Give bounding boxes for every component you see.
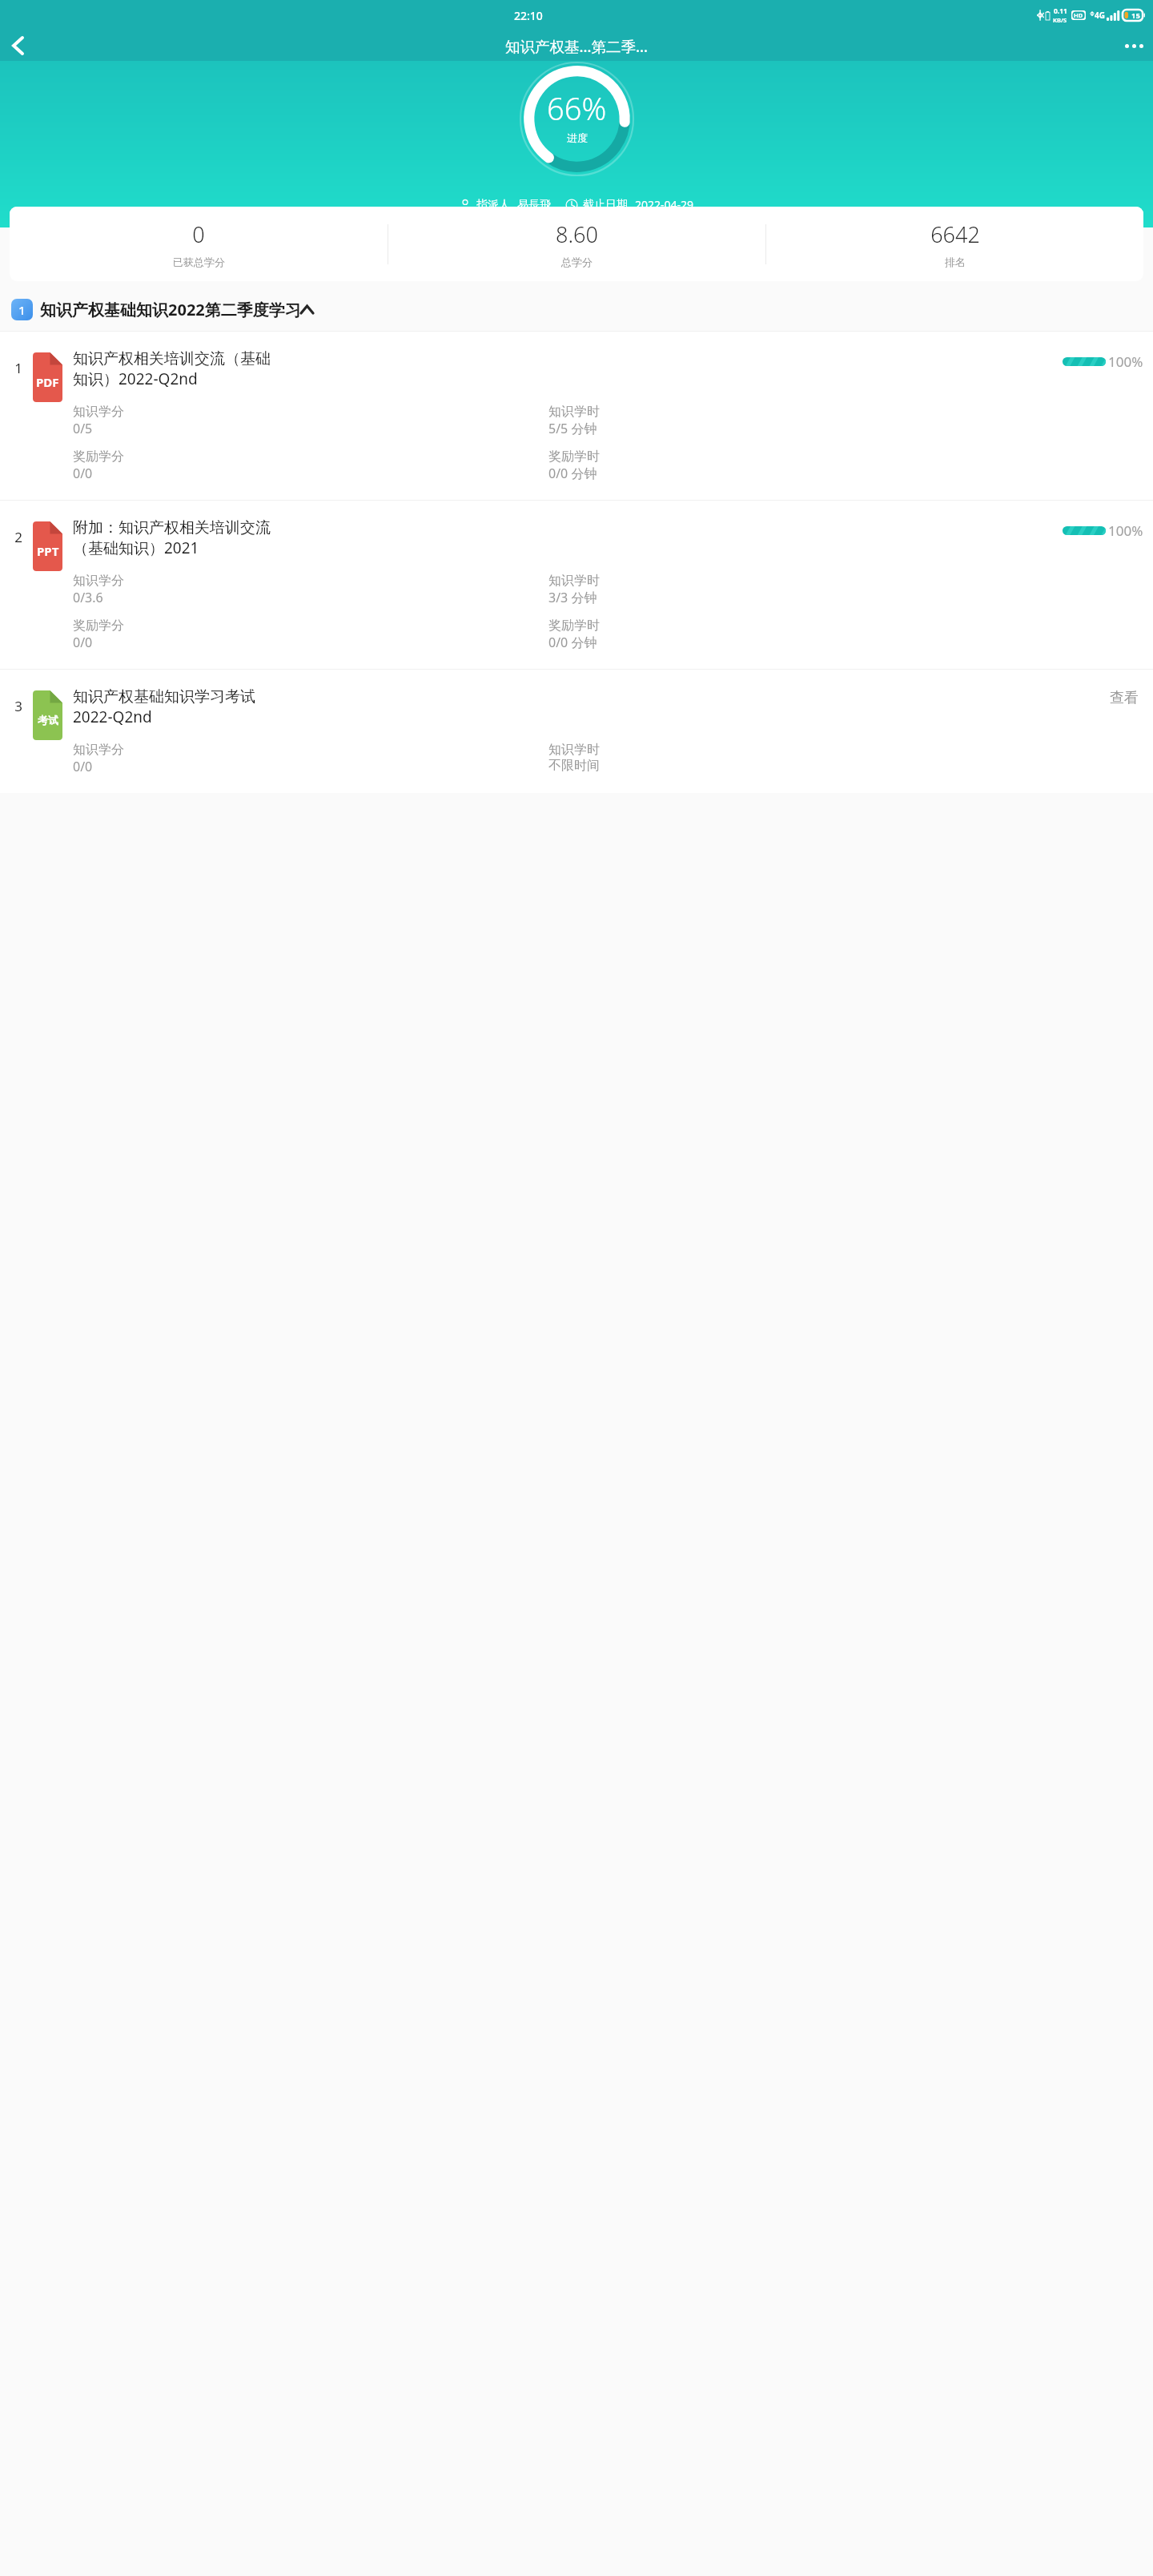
staticText: 6642	[930, 219, 980, 249]
staticText: 截止日期	[583, 198, 628, 212]
staticText: 知识学时	[548, 573, 600, 589]
staticText: 0/3.6	[73, 589, 103, 606]
staticText: 0/0 分钟	[548, 465, 597, 482]
staticText: 3/3 分钟	[548, 589, 597, 606]
staticText: 奖励学分	[73, 449, 124, 465]
staticText: 知识产权基础知识2022第二季度学习	[40, 299, 301, 320]
staticText: 奖励学时	[548, 449, 600, 465]
staticText: 知识学时	[548, 742, 600, 758]
staticText: 5/5 分钟	[548, 420, 597, 437]
staticText: 总学分	[561, 256, 593, 268]
button[interactable]: More options	[1115, 30, 1153, 61]
staticText: 知识）2022-Q2nd	[73, 368, 198, 389]
staticText: 0/0	[73, 634, 93, 651]
staticText: 0/0	[73, 465, 93, 482]
staticText: 易長飛	[517, 198, 551, 212]
staticText: 查看	[1110, 689, 1139, 707]
staticText: 知识产权相关培训交流（基础	[73, 349, 271, 368]
staticText: 1	[18, 302, 26, 318]
staticText: 知识学分	[73, 573, 124, 589]
staticText: 0.11	[1054, 6, 1067, 16]
staticText: 0/0 分钟	[548, 634, 597, 651]
staticText: 0	[192, 219, 205, 249]
staticText: 2022-Q2nd	[73, 706, 152, 727]
staticText: 奖励学时	[548, 618, 600, 634]
staticText: 4G	[1095, 10, 1105, 21]
staticText: 知识学分	[73, 742, 124, 758]
staticText: 附加：知识产权相关培训交流	[73, 518, 271, 537]
button[interactable]: 2	[0, 501, 1153, 669]
staticText: 指派人	[476, 198, 510, 212]
staticText: 0/5	[73, 420, 93, 437]
button[interactable]: 查看	[1105, 687, 1143, 709]
staticText: 考试	[38, 714, 58, 727]
staticText: KB/S	[1053, 16, 1067, 24]
staticText: 1	[6, 359, 30, 377]
staticText: 66%	[547, 87, 607, 129]
staticText: 排名	[945, 256, 966, 268]
staticText: 2022-04-29	[635, 197, 694, 212]
staticText: 知识学时	[548, 404, 600, 420]
staticText: 100%	[1108, 352, 1143, 371]
staticText: 已获总学分	[173, 256, 225, 268]
staticText: 进度	[567, 131, 588, 144]
staticText: 8.60	[556, 219, 598, 249]
staticText: 不限时间	[548, 758, 600, 774]
staticText: 22:10	[514, 8, 543, 23]
staticText: 2	[6, 528, 30, 546]
button[interactable]: 1	[0, 332, 1153, 500]
staticText: 15	[1131, 10, 1140, 21]
staticText: （基础知识）2021	[73, 537, 199, 558]
staticText: 0/0	[73, 758, 93, 775]
staticText: 3	[6, 697, 30, 715]
staticText: 奖励学分	[73, 618, 124, 634]
button[interactable]: 0	[10, 207, 1143, 281]
staticText: HD	[1074, 11, 1083, 19]
staticText: 知识学分	[73, 404, 124, 420]
button[interactable]: 3	[0, 670, 1153, 793]
button[interactable]: Back	[0, 30, 35, 61]
staticText: 知识产权基…第二季…	[505, 36, 648, 56]
button[interactable]: 1	[0, 288, 1153, 331]
staticText: 100%	[1108, 521, 1143, 540]
staticText: PDF	[36, 374, 59, 390]
staticText: PPT	[37, 543, 59, 559]
staticText: 知识产权基础知识学习考试	[73, 687, 255, 706]
